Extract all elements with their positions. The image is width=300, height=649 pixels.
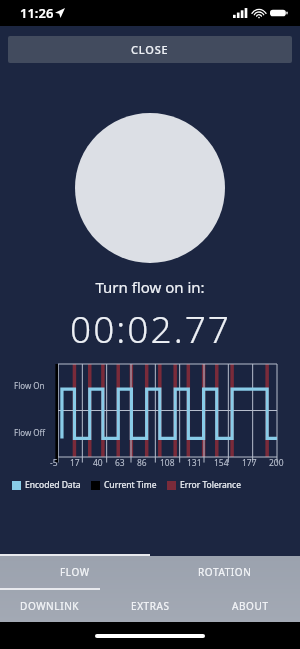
staticText: 131 [187, 457, 202, 469]
staticText: 11:26 [20, 4, 54, 22]
staticText: ABOUT [232, 599, 269, 613]
staticText: FLOW [60, 565, 90, 579]
button[interactable]: CLOSE [8, 36, 292, 63]
staticText: 108 [160, 457, 175, 469]
staticText: Current Time [104, 479, 157, 491]
staticText: 154 [214, 457, 229, 469]
staticText: 00:02.77 [70, 303, 231, 353]
staticText: EXTRAS [131, 599, 170, 613]
staticText: -5 [50, 457, 58, 469]
button[interactable]: DOWNLINK [0, 590, 100, 622]
button[interactable]: FLOW [0, 556, 150, 588]
staticText: Flow On [14, 380, 45, 391]
button[interactable]: ROTATION [150, 556, 300, 588]
staticText: Flow Off [14, 427, 46, 438]
staticText: 177 [242, 457, 257, 469]
staticText: DOWNLINK [20, 599, 80, 613]
staticText: CLOSE [131, 42, 169, 57]
staticText: Encoded Data [25, 479, 81, 491]
staticText: 63 [115, 457, 125, 469]
staticText: ROTATION [198, 565, 252, 579]
staticText: Turn flow on in: [95, 277, 205, 297]
staticText: Error Tolerance [180, 479, 241, 491]
staticText: 17 [70, 457, 80, 469]
staticText: 40 [93, 457, 103, 469]
staticText: 86 [137, 457, 147, 469]
staticText: 200 [269, 457, 284, 469]
button[interactable]: EXTRAS [100, 590, 200, 622]
button[interactable]: ABOUT [200, 590, 300, 622]
